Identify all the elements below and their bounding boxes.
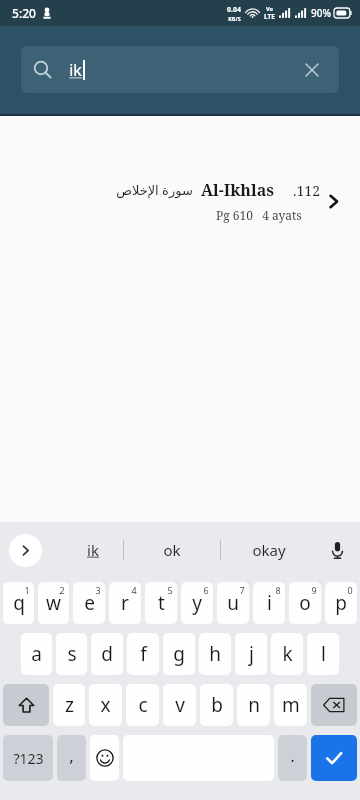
button[interactable]: Clear search	[297, 55, 327, 85]
staticText: d	[101, 641, 113, 667]
staticText: ik	[69, 59, 82, 81]
other: Open surah	[320, 188, 346, 214]
button[interactable]: n	[237, 684, 270, 726]
button[interactable]: j	[235, 633, 267, 675]
staticText: .	[290, 744, 295, 767]
button[interactable]: b	[200, 684, 233, 726]
staticText: s	[67, 641, 77, 667]
staticText: سورة الإخلاص	[116, 181, 193, 199]
button[interactable]: w	[38, 582, 69, 624]
button[interactable]: Shift	[3, 684, 49, 726]
staticText: t	[158, 590, 165, 616]
staticText: 7	[239, 584, 245, 596]
staticText: r	[121, 590, 129, 616]
staticText: 6	[203, 584, 209, 596]
button[interactable]: h	[199, 633, 231, 675]
staticText: v	[175, 692, 185, 718]
button[interactable]: g	[163, 633, 195, 675]
button[interactable]: e	[73, 582, 105, 624]
button[interactable]: x	[89, 684, 122, 726]
staticText: 90%	[311, 6, 331, 20]
staticText: h	[209, 641, 221, 667]
button[interactable]: t	[145, 582, 177, 624]
button[interactable]: okay	[221, 522, 317, 578]
button[interactable]: Enter	[311, 735, 357, 781]
staticText: KB/S	[228, 15, 241, 22]
staticText: m	[282, 692, 300, 718]
button[interactable]: ,	[57, 735, 86, 781]
button[interactable]: i	[253, 582, 285, 624]
staticText: 8	[275, 584, 281, 596]
button[interactable]: سورة الإخلاص	[0, 172, 360, 230]
staticText: .112	[293, 181, 320, 200]
staticText: w	[46, 590, 61, 616]
staticText: c	[138, 692, 148, 718]
staticText: 4	[131, 584, 137, 596]
staticText: Vo	[266, 5, 273, 12]
button[interactable]: r	[109, 582, 141, 624]
button[interactable]: ik	[21, 46, 339, 93]
staticText: 1	[24, 584, 30, 596]
button[interactable]: .	[278, 735, 307, 781]
staticText: 3	[95, 584, 101, 596]
button[interactable]: d	[91, 633, 123, 675]
staticText: 4 ayats	[262, 207, 302, 223]
staticText: 0	[347, 584, 353, 596]
button[interactable]: ?123	[3, 735, 53, 781]
staticText: l	[321, 641, 326, 667]
staticText: ,	[69, 744, 74, 767]
staticText: y	[192, 590, 202, 616]
staticText: o	[299, 590, 311, 616]
button[interactable]: a	[21, 633, 52, 675]
staticText: 0.04	[227, 5, 241, 15]
button[interactable]: s	[56, 633, 87, 675]
staticText: Al-Ikhlas	[201, 179, 274, 201]
staticText: p	[335, 590, 347, 616]
button[interactable]: Emoji	[90, 735, 119, 781]
staticText: n	[248, 692, 260, 718]
button[interactable]: o	[289, 582, 321, 624]
button[interactable]: q	[3, 582, 34, 624]
button[interactable]: v	[163, 684, 196, 726]
button[interactable]: m	[274, 684, 307, 726]
button[interactable]: More suggestions	[9, 534, 42, 567]
staticText: i	[267, 590, 272, 616]
staticText: f	[140, 641, 147, 667]
staticText: k	[282, 641, 293, 667]
staticText: okay	[252, 540, 286, 560]
button[interactable]: ik	[63, 522, 123, 578]
staticText: a	[31, 641, 42, 667]
staticText: b	[211, 692, 223, 718]
staticText: 5:20	[12, 5, 36, 21]
button[interactable]: ok	[124, 522, 220, 578]
staticText: ik	[87, 540, 99, 560]
staticText: x	[100, 692, 111, 718]
button[interactable]: p	[325, 582, 357, 624]
button[interactable]: k	[271, 633, 303, 675]
button[interactable]: c	[126, 684, 159, 726]
staticText: 9	[311, 584, 317, 596]
staticText: 2	[59, 584, 65, 596]
staticText: j	[249, 641, 254, 667]
staticText: LTE	[264, 12, 275, 21]
button[interactable]: z	[53, 684, 85, 726]
button[interactable]: f	[127, 633, 159, 675]
staticText: u	[227, 590, 239, 616]
staticText: ok	[163, 540, 181, 560]
staticText: 5	[167, 584, 173, 596]
staticText: q	[13, 590, 25, 616]
staticText: e	[84, 590, 95, 616]
staticText: g	[173, 641, 185, 667]
staticText: ?123	[13, 749, 44, 768]
button[interactable]: Backspace	[311, 684, 357, 726]
button[interactable]: y	[181, 582, 213, 624]
button[interactable]: Voice input	[317, 522, 357, 578]
staticText: z	[65, 692, 74, 718]
button[interactable]: l	[307, 633, 339, 675]
staticText: Pg 610	[216, 207, 253, 223]
button[interactable]: u	[217, 582, 249, 624]
